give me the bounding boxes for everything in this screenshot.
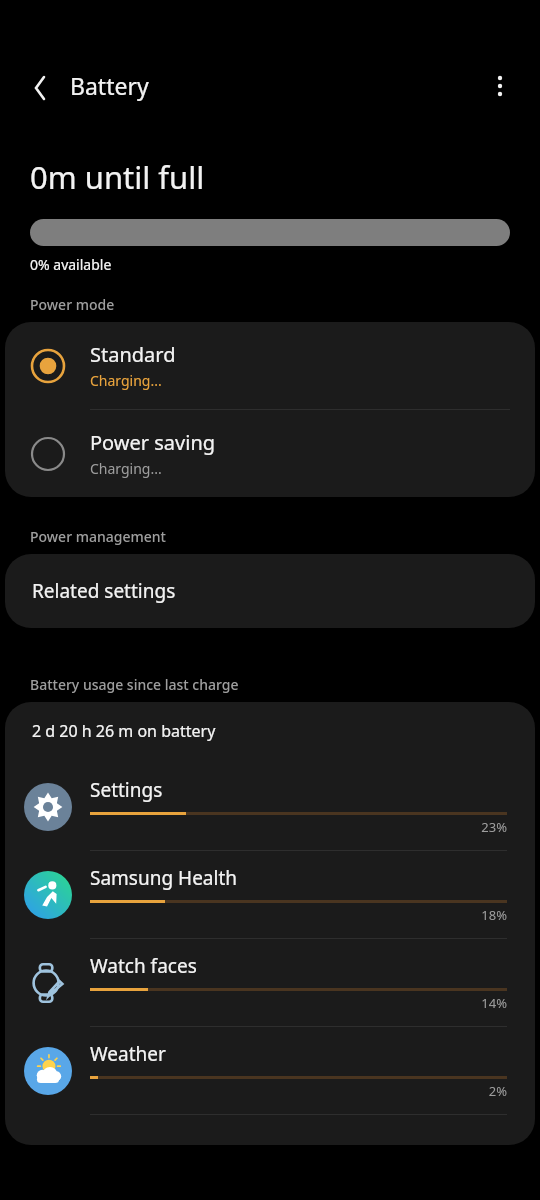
button[interactable]: Samsung Health: [5, 851, 535, 938]
button[interactable]: More options: [476, 62, 524, 110]
button[interactable]: Watch faces: [5, 939, 535, 1026]
button[interactable]: Related settings: [5, 554, 535, 628]
button[interactable]: Standard: [5, 322, 535, 409]
staticText: Power management: [30, 527, 166, 546]
staticText: Watch faces: [90, 953, 197, 979]
staticText: Charging...: [90, 371, 162, 390]
button[interactable]: Back: [14, 62, 66, 114]
staticText: 23%: [90, 818, 507, 836]
button[interactable]: Settings: [5, 763, 535, 850]
staticText: Charging...: [90, 459, 162, 478]
staticText: Battery usage since last charge: [30, 675, 239, 694]
staticText: Standard: [90, 341, 176, 368]
staticText: 2 d 20 h 26 m on battery: [32, 720, 216, 742]
staticText: Power mode: [30, 295, 115, 314]
staticText: Settings: [90, 777, 163, 803]
button[interactable]: Power saving: [5, 410, 535, 497]
staticText: 0% available: [30, 255, 112, 274]
staticText: 0m until full: [30, 156, 205, 198]
staticText: 18%: [90, 906, 507, 924]
staticText: Power saving: [90, 429, 216, 456]
staticText: Related settings: [32, 578, 176, 604]
staticText: Weather: [90, 1041, 166, 1067]
staticText: Battery: [70, 70, 149, 101]
staticText: 2%: [90, 1082, 507, 1100]
staticText: Samsung Health: [90, 865, 238, 891]
staticText: 14%: [90, 994, 507, 1012]
button[interactable]: Weather: [5, 1027, 535, 1114]
